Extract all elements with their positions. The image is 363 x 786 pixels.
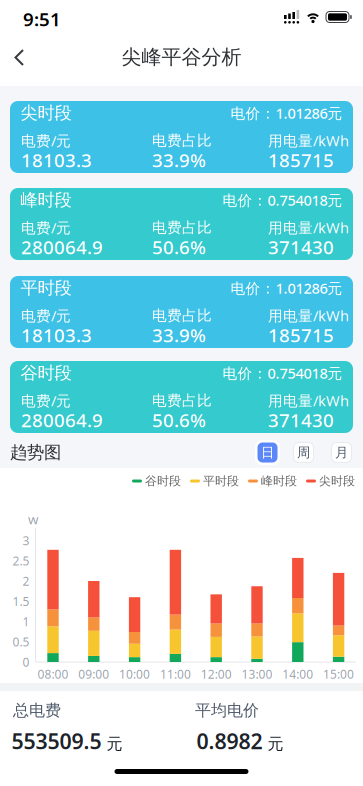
staticText: 18103.3 [21, 323, 92, 347]
staticText: 谷时段 [20, 362, 71, 384]
staticText: 电费占比 [152, 218, 212, 236]
staticText: 电价：0.754018元 [222, 363, 342, 383]
staticText: 33.9% [152, 148, 206, 172]
staticText: 电费占比 [152, 131, 212, 149]
button[interactable]: 平时段 [10, 276, 353, 348]
staticText: 用电量/kWh [268, 131, 349, 150]
staticText: 电费占比 [152, 391, 212, 409]
staticText: w [28, 510, 38, 528]
staticText: 1 [22, 613, 29, 629]
staticText: 1.5 [12, 593, 29, 609]
button[interactable]: 日 [255, 440, 280, 465]
staticText: 电费/元 [21, 131, 71, 150]
staticText: 10:00 [119, 666, 150, 682]
staticText: 11:00 [160, 666, 191, 682]
staticText: 14:00 [282, 666, 313, 682]
staticText: 总电费 [13, 701, 61, 720]
staticText: 峰时段 [20, 189, 71, 211]
staticText: 12:00 [201, 666, 232, 682]
staticText: 0.5 [12, 634, 29, 650]
staticText: 平均电价 [195, 701, 259, 720]
button[interactable]: 峰时段 [10, 188, 353, 260]
staticText: 峰时段 [261, 474, 297, 488]
staticText: 用电量/kWh [268, 218, 349, 237]
staticText: 尖时段 [319, 474, 355, 488]
staticText: 元 [267, 734, 283, 754]
staticText: 用电量/kWh [268, 306, 349, 325]
staticText: 553509.5 [11, 727, 101, 755]
staticText: 平时段 [203, 474, 239, 488]
staticText: 50.6% [152, 235, 206, 259]
staticText: 谷时段 [145, 474, 181, 488]
staticText: 平时段 [20, 277, 71, 299]
staticText: 电费/元 [21, 306, 71, 325]
staticText: 08:00 [37, 666, 68, 682]
staticText: 周 [297, 444, 310, 461]
staticText: 280064.9 [21, 408, 103, 432]
button[interactable]: Back [5, 42, 35, 72]
staticText: 280064.9 [21, 235, 103, 259]
button[interactable]: 周 [293, 442, 313, 462]
staticText: 185715 [268, 148, 334, 172]
staticText: 13:00 [241, 666, 272, 682]
staticText: 尖峰平谷分析 [121, 45, 241, 69]
staticText: 0 [22, 654, 29, 670]
staticText: 3 [22, 532, 29, 548]
staticText: 电价：1.01286元 [230, 278, 342, 298]
staticText: 185715 [268, 323, 334, 347]
staticText: 2 [22, 573, 29, 589]
staticText: 用电量/kWh [268, 391, 349, 410]
staticText: 电费/元 [21, 218, 71, 237]
staticText: 月 [335, 444, 348, 461]
staticText: 尖时段 [20, 102, 71, 124]
button[interactable]: 尖时段 [10, 101, 353, 173]
staticText: 趋势图 [10, 442, 61, 463]
button[interactable]: 谷时段 [10, 361, 353, 433]
staticText: 15:00 [323, 666, 354, 682]
staticText: 0.8982 [196, 727, 262, 755]
staticText: 371430 [268, 408, 334, 432]
button[interactable]: 月 [331, 442, 351, 462]
staticText: 371430 [268, 235, 334, 259]
staticText: 日 [261, 444, 274, 461]
staticText: 元 [106, 734, 122, 754]
staticText: 50.6% [152, 408, 206, 432]
staticText: 33.9% [152, 323, 206, 347]
staticText: 电费/元 [21, 391, 71, 410]
staticText: 18103.3 [21, 148, 92, 172]
staticText: 09:00 [78, 666, 109, 682]
staticText: 电费占比 [152, 306, 212, 324]
staticText: 电价：1.01286元 [230, 103, 342, 123]
staticText: 9:51 [23, 7, 61, 31]
staticText: 电价：0.754018元 [222, 190, 342, 210]
staticText: 2.5 [12, 553, 29, 569]
